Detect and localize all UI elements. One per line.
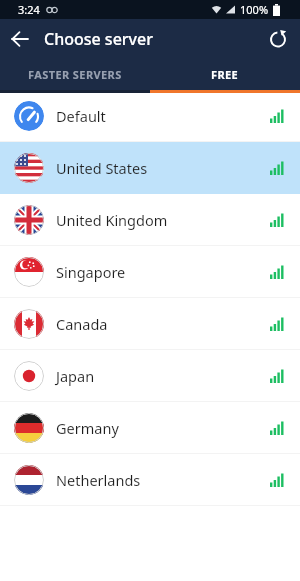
button[interactable]: Netherlands bbox=[0, 454, 300, 505]
staticText: United States bbox=[56, 158, 148, 178]
button[interactable]: Default bbox=[0, 90, 300, 141]
staticText: Netherlands bbox=[56, 470, 141, 490]
staticText: Japan bbox=[56, 366, 95, 386]
button[interactable]: Germany bbox=[0, 402, 300, 453]
button[interactable] bbox=[256, 19, 300, 59]
staticText: Germany bbox=[56, 418, 119, 438]
button[interactable] bbox=[0, 19, 40, 59]
button[interactable]: Singapore bbox=[0, 246, 300, 297]
button[interactable]: United States bbox=[0, 142, 300, 193]
button[interactable]: FASTER SERVERS bbox=[0, 59, 150, 90]
staticText: United Kingdom bbox=[56, 210, 168, 230]
staticText: 3:24 bbox=[18, 2, 40, 17]
staticText: FREE bbox=[211, 67, 239, 82]
button[interactable]: Japan bbox=[0, 350, 300, 401]
button[interactable]: Canada bbox=[0, 298, 300, 349]
button[interactable]: United Kingdom bbox=[0, 194, 300, 245]
staticText: Choose server bbox=[44, 28, 153, 50]
staticText: Singapore bbox=[56, 262, 126, 282]
staticText: 100% bbox=[240, 2, 269, 17]
button[interactable]: FREE bbox=[150, 59, 300, 90]
staticText: Canada bbox=[56, 314, 108, 334]
staticText: Default bbox=[56, 106, 106, 126]
staticText: FASTER SERVERS bbox=[28, 67, 122, 82]
